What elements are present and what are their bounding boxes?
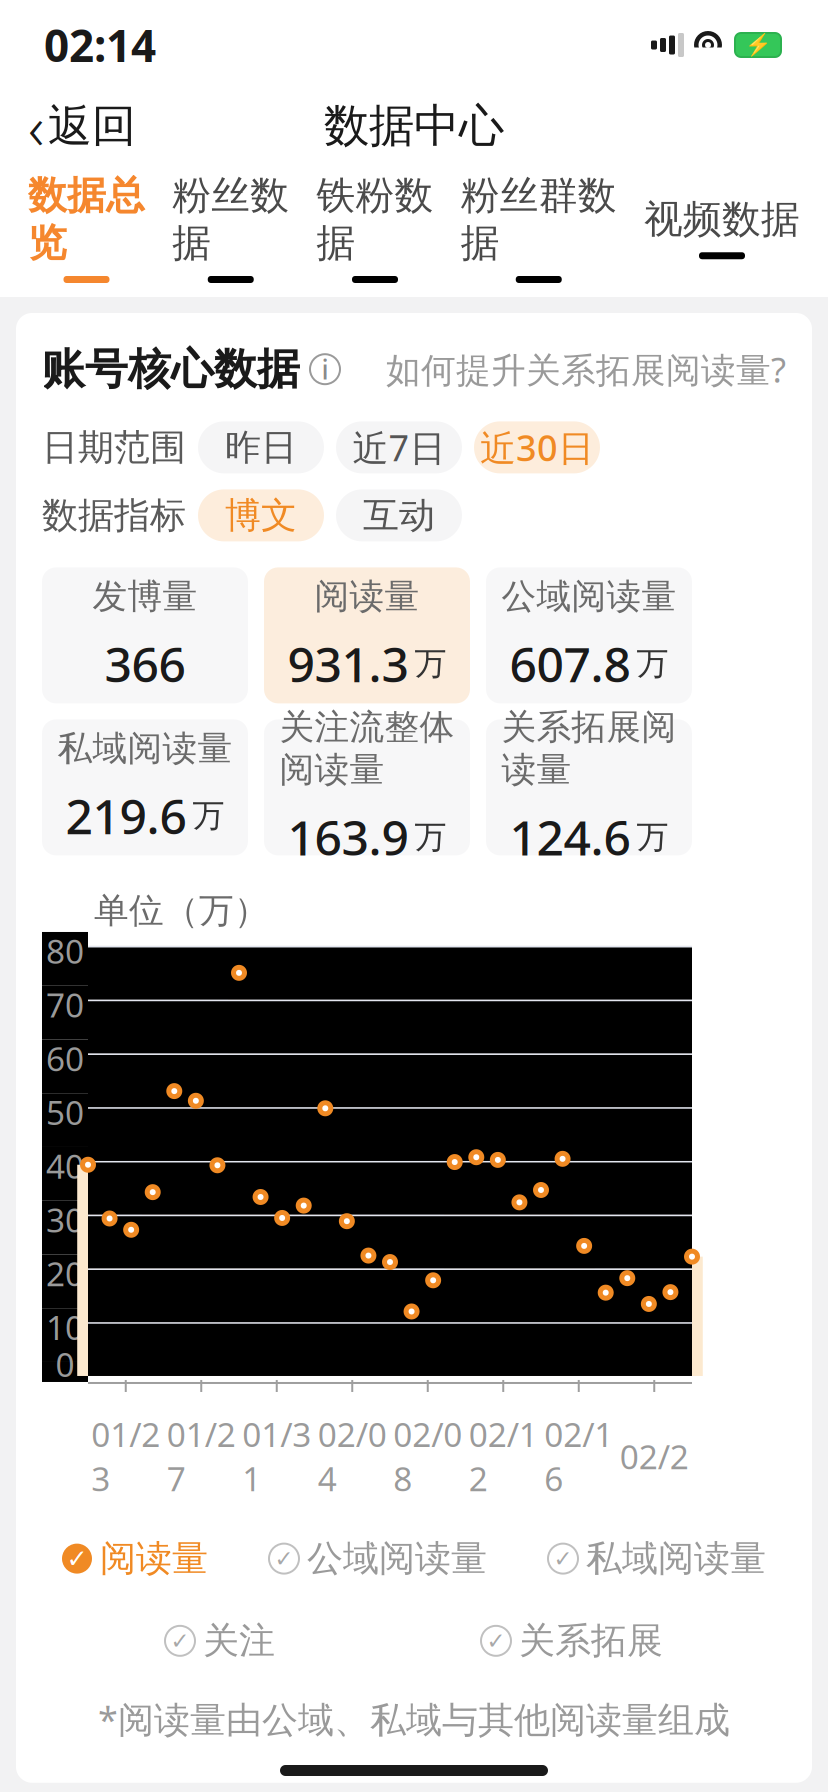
button[interactable]: 昨日 — [198, 421, 324, 473]
button[interactable]: ‹ — [8, 93, 156, 159]
staticText: 02/2 — [620, 1434, 689, 1478]
button[interactable]: 阅读量 — [264, 567, 470, 703]
staticText: 219.6 — [65, 784, 186, 847]
staticText: 互动 — [363, 493, 435, 537]
staticText: 数据指标 — [42, 493, 186, 537]
staticText: 阅读量 — [314, 575, 419, 618]
button[interactable]: ✓ — [62, 1530, 208, 1587]
staticText: 如何提升关系拓展阅读量? — [386, 346, 786, 392]
staticText: 931.3 — [287, 632, 408, 695]
staticText: 02/04 — [318, 1412, 387, 1500]
button[interactable]: 视频数据 — [638, 186, 806, 265]
staticText: 10 — [46, 1305, 84, 1349]
button[interactable]: 近7日 — [336, 421, 462, 473]
staticText: 80 — [46, 929, 84, 973]
staticText: 关注 — [203, 1619, 275, 1663]
staticText: 近7日 — [352, 423, 445, 471]
button[interactable]: 粉丝群数据 — [455, 162, 623, 289]
button[interactable]: ✓ — [165, 1613, 275, 1669]
staticText: 607.8 — [509, 632, 630, 695]
button[interactable]: ✓ — [548, 1530, 766, 1587]
button[interactable]: 如何提升关系拓展阅读量? — [386, 346, 786, 392]
staticText: ✓ — [170, 1628, 189, 1654]
staticText: 近30日 — [480, 423, 594, 471]
staticText: ✓ — [486, 1628, 505, 1654]
button[interactable]: 粉丝数据 — [166, 162, 295, 289]
staticText: 366 — [104, 632, 185, 695]
staticText: ‹ — [28, 85, 44, 167]
staticText: 02:14 — [44, 16, 156, 74]
staticText: 关系拓展 — [519, 1619, 663, 1663]
staticText: 日期范围 — [42, 425, 186, 469]
staticText: ✓ — [274, 1546, 293, 1571]
staticText: 万 — [636, 644, 668, 683]
staticText: 50 — [46, 1090, 84, 1134]
staticText: ✓ — [553, 1546, 572, 1571]
staticText: 返回 — [48, 99, 136, 153]
staticText: 关注流整体阅读量 — [279, 706, 454, 791]
staticText: 万 — [192, 796, 224, 835]
staticText: 粉丝群数据 — [461, 172, 617, 267]
staticText: 01/27 — [167, 1412, 236, 1500]
staticText: 01/23 — [91, 1412, 160, 1500]
staticText: 数据中心 — [324, 98, 504, 154]
staticText: 数据总览 — [28, 172, 145, 267]
staticText: ✓ — [66, 1544, 87, 1573]
staticText: 20 — [46, 1251, 84, 1295]
button[interactable]: 关系拓展阅读量 — [486, 719, 692, 855]
staticText: 博文 — [225, 493, 297, 537]
staticText: 02/16 — [544, 1412, 613, 1500]
button[interactable]: 铁粉数据 — [310, 162, 439, 289]
staticText: 万 — [414, 644, 446, 683]
button[interactable]: 关注流整体阅读量 — [264, 719, 470, 855]
staticText: ⚡ — [744, 33, 771, 57]
staticText: *阅读量由公域、私域与其他阅读量组成 — [98, 1695, 730, 1743]
button[interactable]: ✓ — [269, 1530, 487, 1587]
button[interactable]: 互动 — [336, 489, 462, 541]
button[interactable]: 博文 — [198, 489, 324, 541]
staticText: 公域阅读量 — [307, 1536, 487, 1581]
staticText: 私域阅读量 — [586, 1536, 766, 1581]
staticText: 阅读量 — [100, 1536, 208, 1581]
staticText: 粉丝数据 — [172, 172, 289, 267]
staticText: 40 — [46, 1144, 84, 1188]
staticText: 铁粉数据 — [316, 172, 433, 267]
staticText: 关系拓展阅读量 — [501, 706, 676, 791]
button[interactable]: 私域阅读量 — [42, 719, 248, 855]
staticText: 70 — [46, 982, 84, 1027]
button[interactable]: 发博量 — [42, 567, 248, 703]
staticText: 账号核心数据 — [42, 343, 300, 395]
staticText: 发博量 — [92, 575, 197, 618]
button[interactable]: 公域阅读量 — [486, 567, 692, 703]
staticText: 02/08 — [393, 1412, 462, 1500]
staticText: 60 — [46, 1036, 84, 1080]
staticText: 万 — [636, 817, 668, 857]
button[interactable]: 说明 — [310, 351, 340, 387]
staticText: 昨日 — [225, 425, 297, 469]
button[interactable]: ✓ — [481, 1613, 663, 1669]
staticText: 01/31 — [242, 1412, 311, 1500]
button[interactable]: 数据总览 — [22, 162, 151, 289]
staticText: 30 — [46, 1197, 84, 1242]
staticText: 124.6 — [509, 805, 630, 869]
staticText: 私域阅读量 — [57, 727, 232, 770]
staticText: 0 — [55, 1342, 74, 1386]
staticText: 163.9 — [287, 805, 408, 869]
staticText: 视频数据 — [644, 196, 800, 243]
staticText: 公域阅读量 — [501, 575, 676, 618]
staticText: 02/12 — [469, 1412, 538, 1500]
button[interactable]: 近30日 — [474, 421, 600, 473]
staticText: 万 — [414, 817, 446, 857]
staticText: i — [321, 351, 328, 387]
staticText: 单位（万） — [94, 889, 269, 932]
